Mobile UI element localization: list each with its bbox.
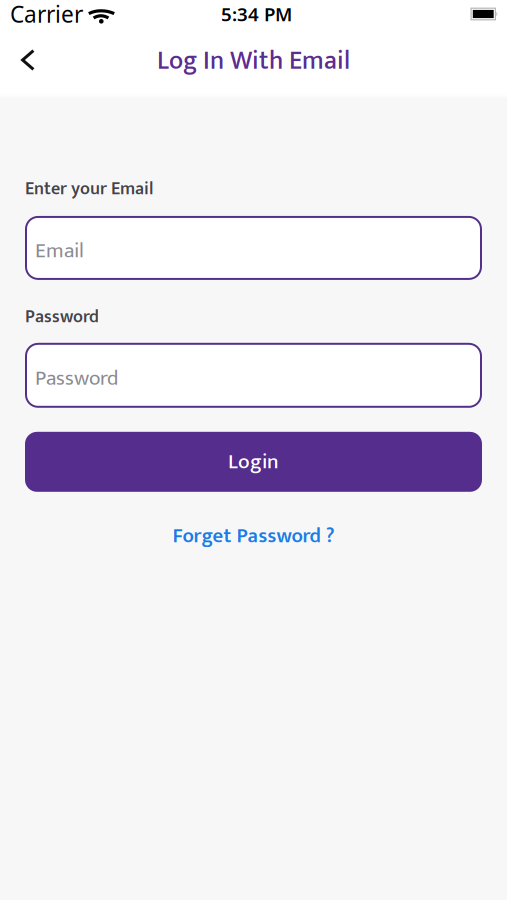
staticText: Password [25,302,99,332]
button[interactable]: Back [0,43,35,77]
button[interactable]: Login [25,432,482,492]
staticText: Log In With Email [157,39,350,83]
staticText: Login [228,444,279,480]
staticText: Email [35,233,84,269]
staticText: 5:34 PM [221,2,292,26]
staticText: Password [35,361,118,396]
staticText: Carrier [10,0,83,29]
button[interactable]: Forget Password ? [172,519,334,553]
staticText: Enter your Email [25,174,153,204]
staticText: Forget Password ? [172,519,334,553]
